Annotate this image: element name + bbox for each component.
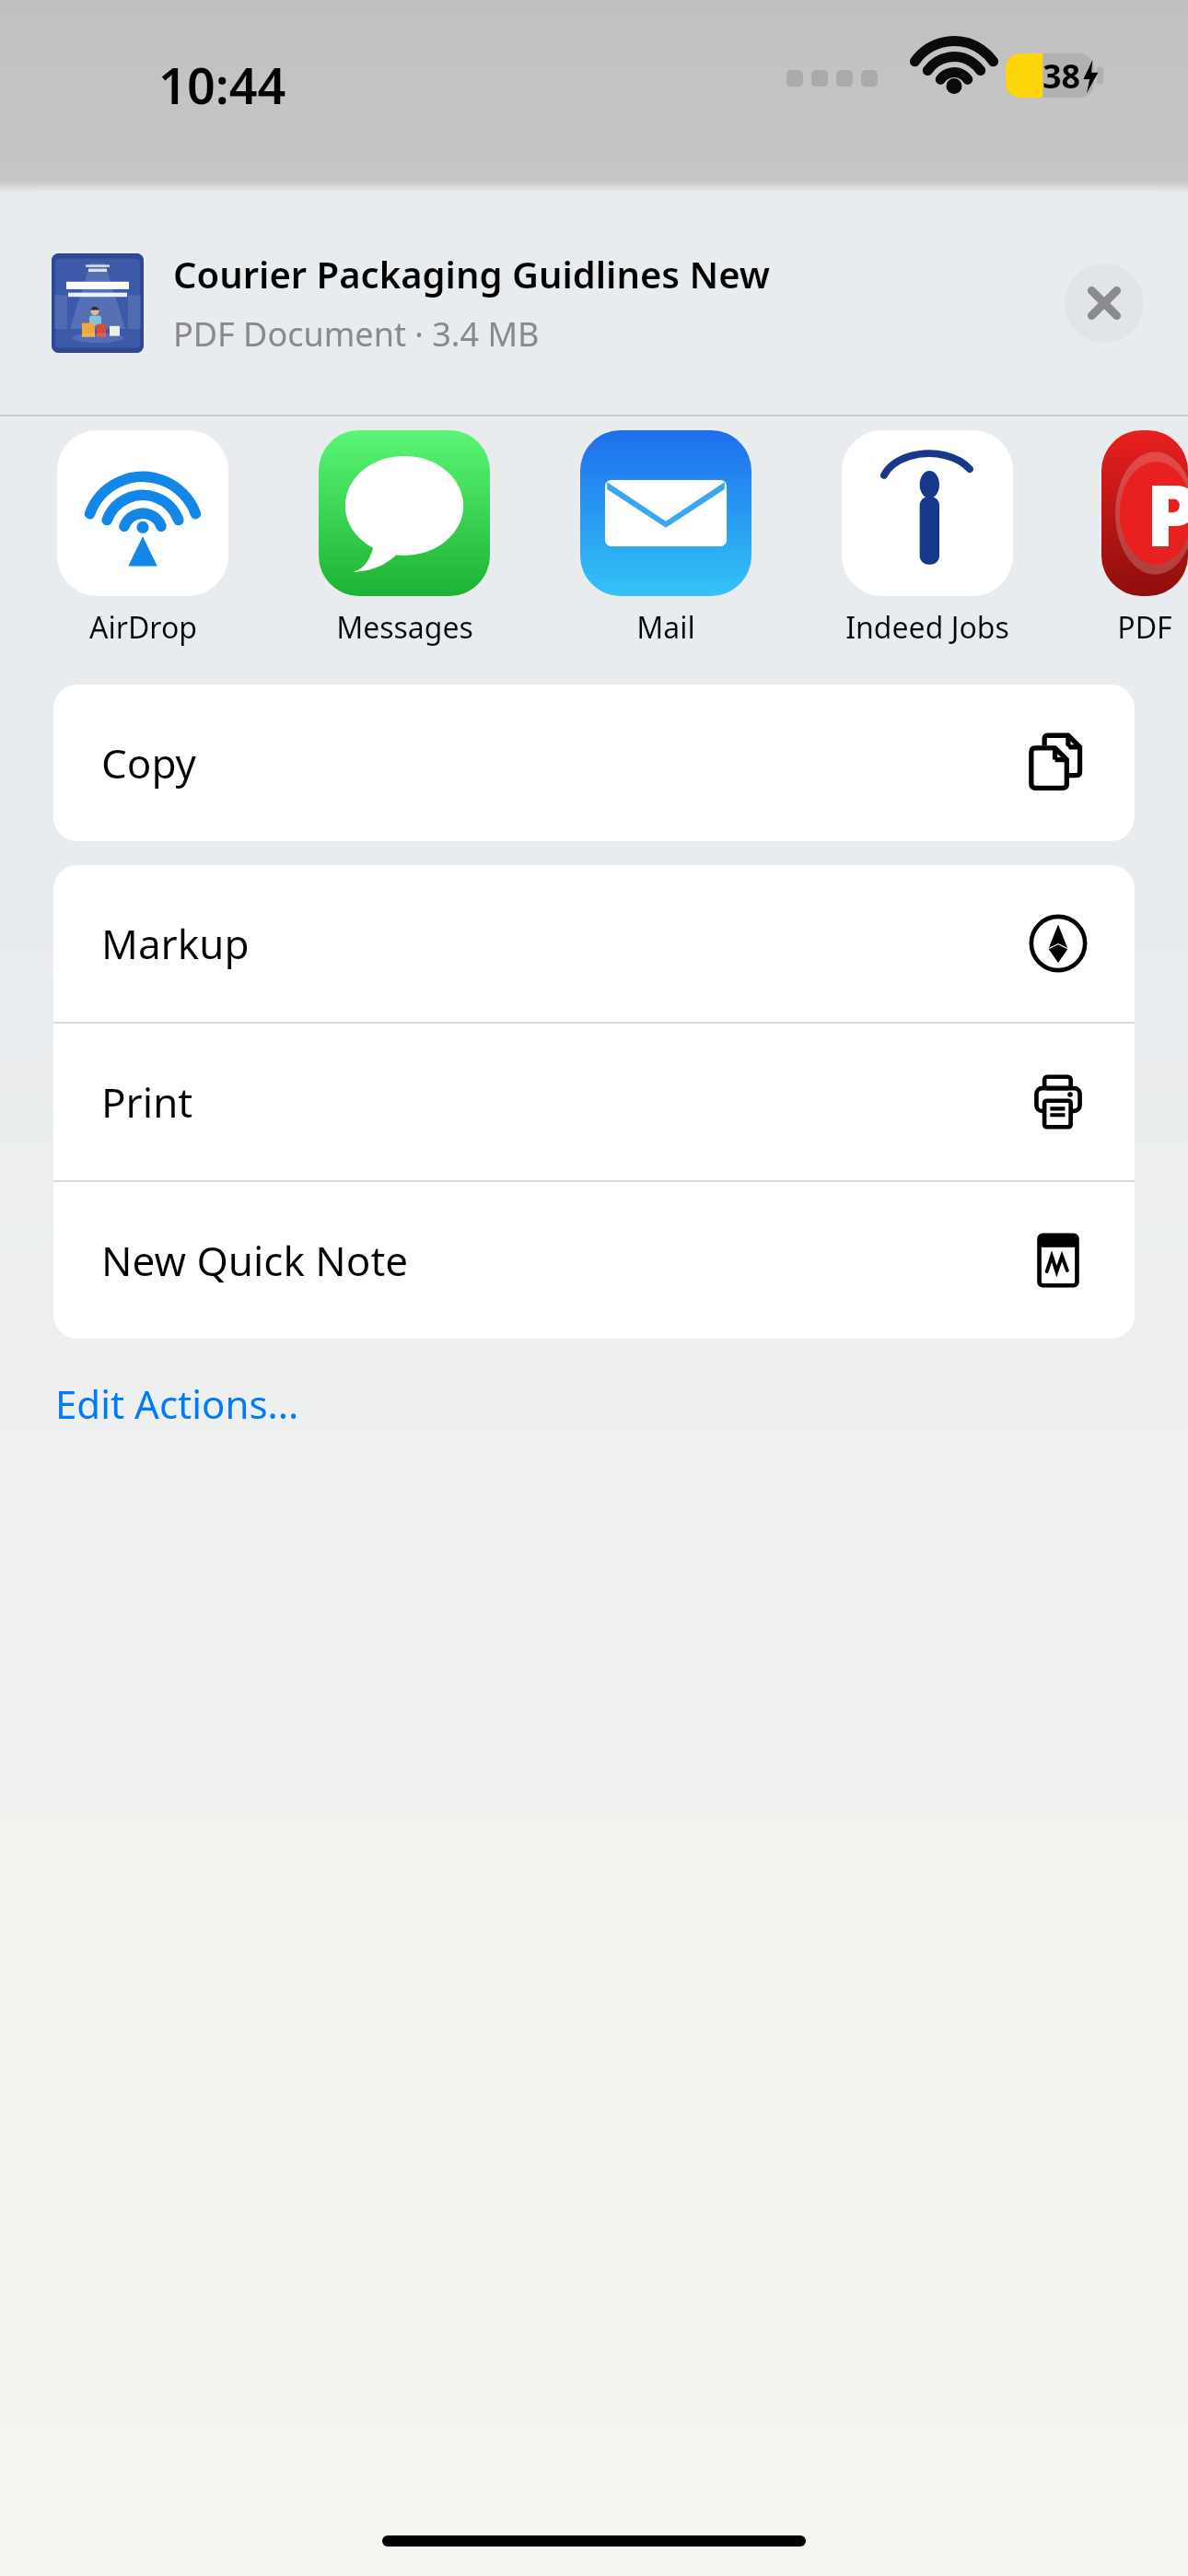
staticText: P: [1146, 456, 1188, 571]
staticText: PDF Document · 3.4 MB: [173, 311, 540, 357]
staticText: Print: [101, 1074, 1030, 1130]
staticText: 10:44: [158, 51, 286, 119]
button[interactable]: Messages: [317, 430, 492, 648]
button[interactable]: AirDrop: [55, 430, 230, 648]
staticText: Courier Packaging Guidlines New: [173, 249, 770, 299]
staticText: Copy: [101, 735, 1030, 790]
staticText: New Quick Note: [101, 1233, 1030, 1288]
button[interactable]: Copy: [53, 685, 1135, 841]
staticText: Markup: [101, 916, 1030, 971]
button[interactable]: New Quick Note: [53, 1182, 1135, 1339]
staticText: PDF: [1117, 607, 1172, 648]
button[interactable]: Indeed Jobs: [840, 430, 1015, 648]
staticText: AirDrop: [89, 607, 197, 648]
button[interactable]: Edit Actions...: [55, 1368, 299, 1439]
staticText: Mail: [636, 607, 695, 648]
staticText: Messages: [336, 607, 473, 648]
button[interactable]: P: [1101, 430, 1188, 648]
button[interactable]: Markup: [53, 865, 1135, 1022]
button[interactable]: Close: [1065, 263, 1144, 343]
staticText: 38: [1042, 53, 1081, 99]
staticText: Indeed Jobs: [845, 607, 1009, 648]
button[interactable]: Mail: [578, 430, 753, 648]
button[interactable]: Print: [53, 1024, 1135, 1180]
